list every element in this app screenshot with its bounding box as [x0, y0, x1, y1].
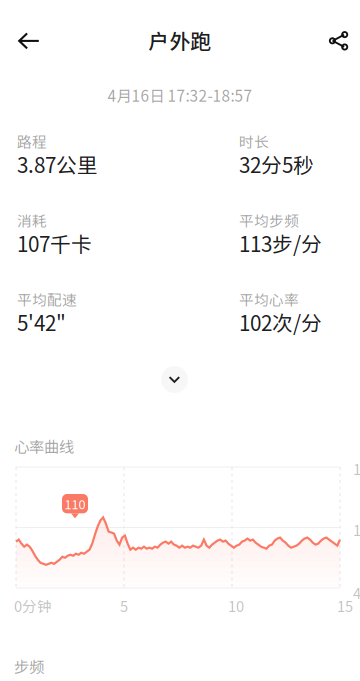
staticText: 32分5秒: [239, 149, 314, 179]
staticText: 102次/分: [239, 307, 322, 337]
staticText: 160: [353, 458, 360, 479]
button[interactable]: Share: [317, 19, 360, 63]
button[interactable]: Show more: [161, 366, 188, 393]
staticText: 40: [353, 582, 360, 603]
staticText: 113步/分: [239, 228, 322, 258]
button[interactable]: Back: [7, 19, 51, 63]
staticText: 消耗: [17, 209, 47, 231]
staticText: 4月16日 17:32-18:57: [107, 84, 252, 106]
staticText: 110: [64, 494, 85, 513]
staticText: 0分钟: [14, 595, 52, 616]
staticText: 10: [228, 595, 244, 616]
staticText: 路程: [17, 130, 47, 152]
staticText: 步频: [14, 655, 44, 677]
staticText: 5: [120, 595, 128, 616]
staticText: 时长: [239, 130, 269, 152]
staticText: 107千卡: [17, 228, 92, 258]
staticText: 3.87公里: [17, 149, 98, 179]
staticText: 心率曲线: [14, 435, 74, 457]
staticText: 15: [337, 595, 353, 616]
staticText: 户外跑: [148, 25, 211, 55]
staticText: 平均配速: [17, 288, 77, 310]
staticText: 平均步频: [239, 209, 299, 231]
staticText: 平均心率: [239, 288, 299, 310]
staticText: 100: [353, 519, 360, 540]
staticText: 5'42": [17, 307, 66, 337]
